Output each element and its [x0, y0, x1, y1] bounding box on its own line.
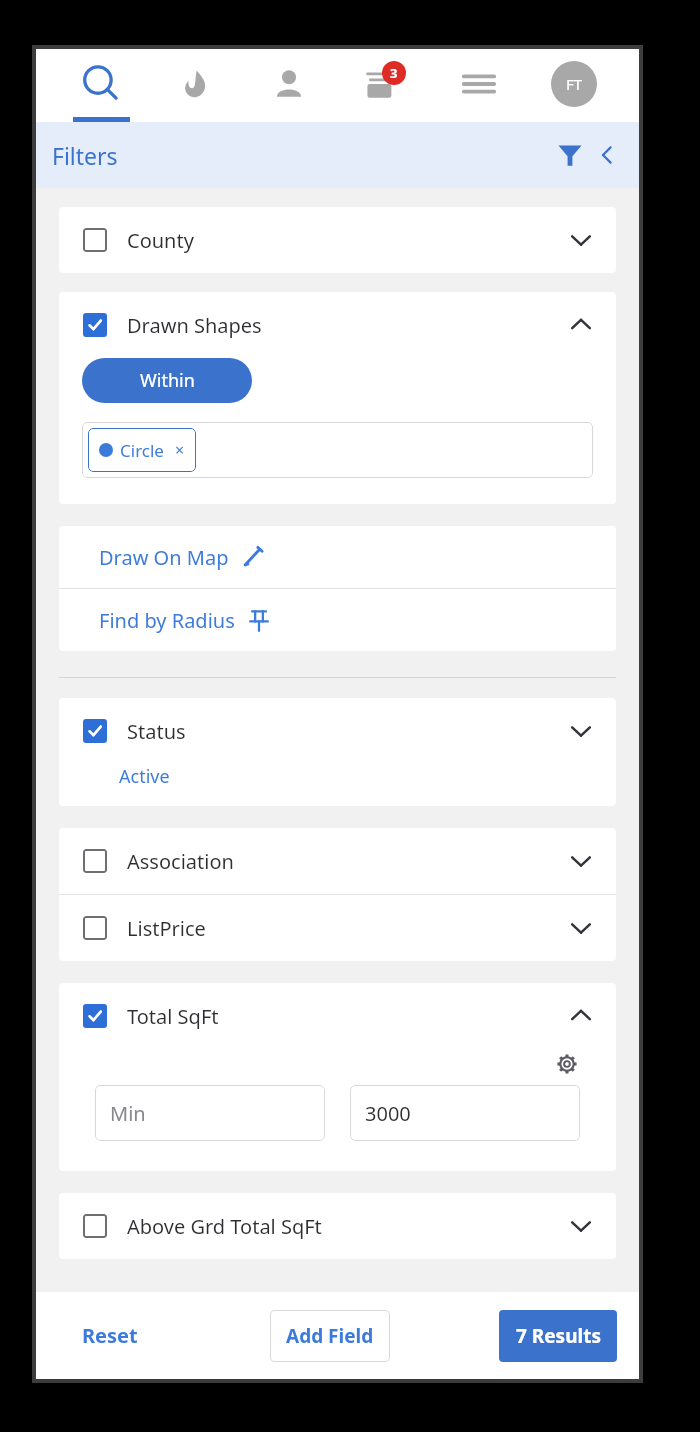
button[interactable]: Add Field	[270, 1310, 390, 1362]
staticText: Active	[119, 764, 170, 789]
button[interactable]: Min	[95, 1085, 325, 1141]
staticText: Status	[127, 718, 186, 745]
staticText: Filters	[52, 140, 118, 171]
staticText: Reset	[82, 1322, 138, 1349]
button[interactable]: Search	[54, 49, 148, 122]
button[interactable]: ListPrice	[59, 895, 616, 961]
staticText: Circle	[120, 439, 164, 462]
button[interactable]: Settings	[552, 1049, 582, 1079]
button[interactable]: 3000	[350, 1085, 580, 1141]
button[interactable]: Reset	[58, 1310, 162, 1361]
staticText: Draw On Map	[99, 544, 229, 571]
staticText: Above Grd Total SqFt	[127, 1213, 322, 1240]
button[interactable]: Menu	[431, 49, 526, 122]
button[interactable]: Filter	[553, 138, 587, 172]
staticText: Within	[140, 368, 195, 393]
staticText: 3000	[365, 1100, 411, 1127]
staticText: Drawn Shapes	[127, 312, 262, 339]
staticText: Total SqFt	[127, 1003, 219, 1030]
button[interactable]: Find by Radius	[59, 589, 616, 651]
staticText: County	[127, 227, 194, 254]
button[interactable]: Drawn Shapes	[59, 292, 616, 358]
button[interactable]: Profile	[242, 49, 336, 122]
staticText: Association	[127, 848, 234, 875]
staticText: FT	[566, 74, 583, 94]
button[interactable]: Circle	[88, 428, 196, 472]
button[interactable]: Collapse	[591, 139, 623, 171]
staticText: Add Field	[286, 1323, 374, 1349]
button[interactable]: Status	[59, 698, 616, 764]
button[interactable]: Hot	[148, 49, 242, 122]
button[interactable]: 7 Results	[499, 1310, 617, 1362]
button[interactable]: Draw On Map	[59, 526, 616, 588]
staticText: Find by Radius	[99, 607, 235, 634]
button[interactable]: Total SqFt	[59, 983, 616, 1049]
button[interactable]: Association	[59, 828, 616, 894]
staticText: ×	[175, 439, 185, 461]
staticText: 3	[390, 64, 398, 82]
button[interactable]: Within	[82, 358, 252, 403]
button[interactable]: Inbox	[336, 49, 431, 122]
button[interactable]: Account	[526, 49, 621, 122]
button[interactable]: Above Grd Total SqFt	[59, 1193, 616, 1259]
button[interactable]: County	[59, 207, 616, 273]
staticText: Min	[110, 1100, 146, 1127]
staticText: ListPrice	[127, 915, 206, 942]
staticText: 7 Results	[516, 1323, 601, 1349]
